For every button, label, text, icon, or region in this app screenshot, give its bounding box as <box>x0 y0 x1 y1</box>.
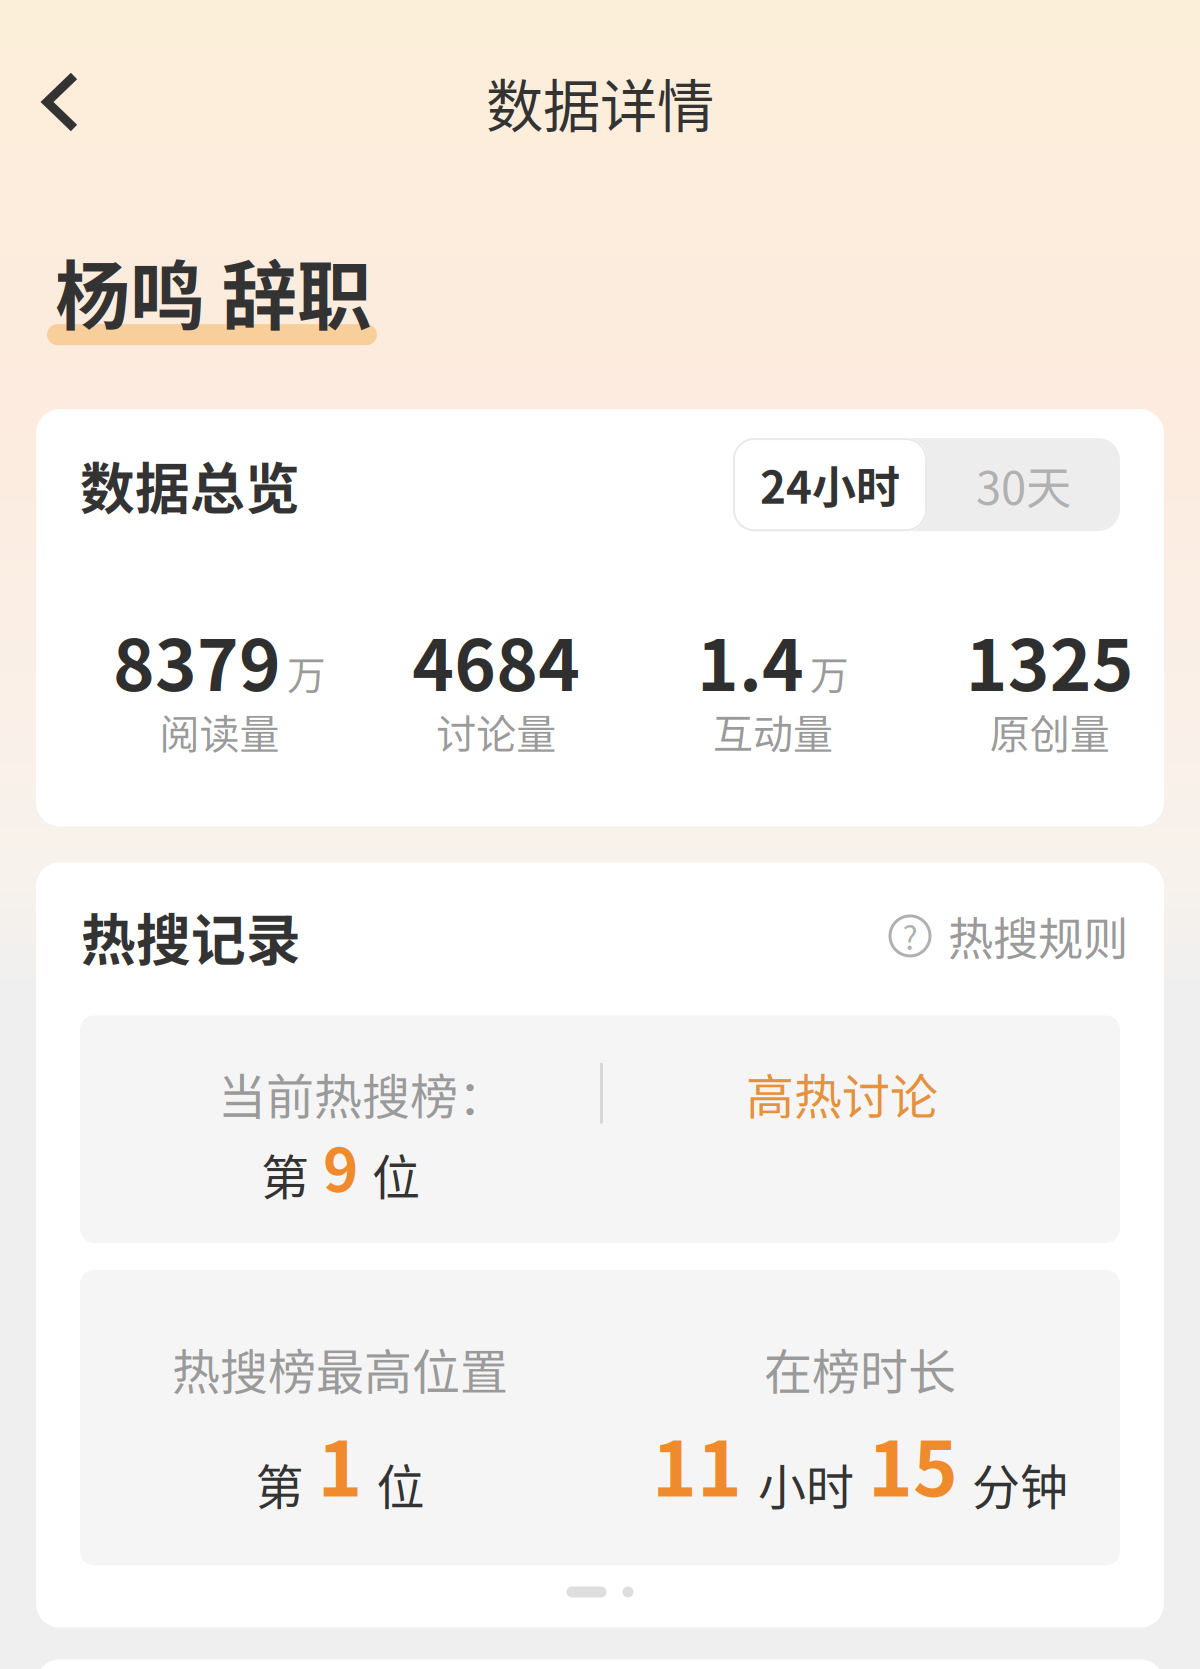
staticText: 热搜榜最高位置 <box>172 1334 508 1403</box>
staticText: 万 <box>810 644 849 700</box>
staticText: 阅读量 <box>159 702 279 760</box>
staticText: 互动量 <box>713 702 833 760</box>
staticText: 第 <box>255 1449 303 1518</box>
staticText: 位 <box>372 1139 420 1209</box>
button[interactable]: Back <box>0 52 105 152</box>
button[interactable]: 30天 <box>927 438 1120 531</box>
staticText: 24小时 <box>760 453 900 516</box>
staticText: ? <box>902 913 917 959</box>
staticText: 4684 <box>412 609 580 711</box>
staticText: 当前热搜榜： <box>218 1058 506 1128</box>
staticText: 在榜时长 <box>764 1334 956 1403</box>
staticText: 高热讨论 <box>746 1058 938 1128</box>
staticText: 分钟 <box>972 1449 1068 1518</box>
button[interactable]: 24小时 <box>733 438 927 531</box>
staticText: 1 <box>317 1408 362 1518</box>
staticText: 数据详情 <box>486 60 714 143</box>
button[interactable]: ? <box>889 903 1128 969</box>
staticText: 杨鸣 辞职 <box>55 237 372 345</box>
staticText: 万 <box>287 644 326 700</box>
staticText: 位 <box>376 1449 424 1518</box>
staticText: 1325 <box>966 609 1134 711</box>
staticText: 15 <box>868 1408 958 1518</box>
staticText: 小时 <box>758 1449 854 1518</box>
staticText: 数据总览 <box>80 445 300 524</box>
staticText: 9 <box>323 1122 358 1209</box>
staticText: 11 <box>652 1408 742 1518</box>
staticText: 1.4 <box>697 609 804 711</box>
staticText: 第 <box>261 1139 309 1209</box>
staticText: 热搜记录 <box>81 896 301 976</box>
staticText: 原创量 <box>990 702 1110 760</box>
staticText: 30天 <box>976 452 1071 517</box>
staticText: 讨论量 <box>436 702 556 760</box>
staticText: 热搜规则 <box>948 903 1128 969</box>
staticText: 8379 <box>113 609 281 711</box>
